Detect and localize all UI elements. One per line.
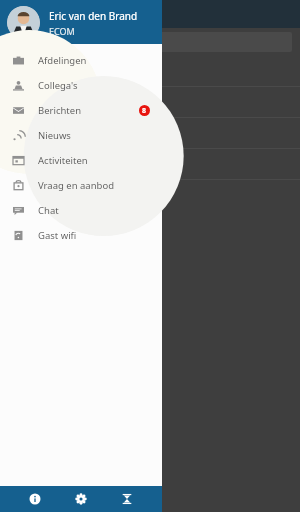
staticText: Development xyxy=(44,104,101,116)
staticText: Chat xyxy=(38,204,59,217)
button[interactable]: Collega's xyxy=(0,73,162,98)
staticText: 8 xyxy=(142,106,147,116)
button[interactable]: ECOM xyxy=(0,87,300,118)
button[interactable]: Chat xyxy=(0,198,162,223)
staticText: Gast wifi xyxy=(38,229,77,242)
staticText: Eric van den Brand xyxy=(49,9,138,23)
staticText: ECOM ICT BV xyxy=(44,120,106,134)
staticText: ICT xyxy=(44,135,58,147)
button[interactable]: Nieuws xyxy=(0,123,162,148)
staticText: SalesRapp xyxy=(44,151,93,165)
button[interactable]: Vraag en aanbod xyxy=(0,173,162,198)
button[interactable]: Eric van den Brand xyxy=(0,0,162,44)
button[interactable]: Activiteiten xyxy=(0,148,162,173)
button[interactable]: Gast wifi xyxy=(0,223,162,248)
button[interactable]: Back xyxy=(3,5,21,23)
staticText: ECOM xyxy=(44,89,73,103)
button[interactable]: DOTCOM Projects BV xyxy=(0,56,300,87)
button[interactable]: Settings xyxy=(70,488,92,510)
button[interactable]: Afdelingen xyxy=(0,48,162,73)
button[interactable]: Information xyxy=(24,488,46,510)
staticText: Afdelingen xyxy=(38,54,87,67)
button[interactable]: Berichten xyxy=(0,98,162,123)
staticText: DOTCOM Projects BV xyxy=(44,58,143,72)
staticText: Vraag en aanbod xyxy=(38,179,114,192)
button[interactable]: Log out xyxy=(116,488,138,510)
staticText: Development xyxy=(44,73,101,85)
staticText: Nieuws xyxy=(38,129,71,142)
button[interactable]: SalesRapp xyxy=(0,149,300,180)
button[interactable]: ec xyxy=(8,32,292,52)
staticText: Activiteiten xyxy=(38,154,88,167)
staticText: Berichten xyxy=(38,104,81,117)
button[interactable]: ECOM ICT BV xyxy=(0,118,300,149)
staticText: Collega's xyxy=(38,79,78,92)
staticText: Nieuws xyxy=(48,7,87,22)
staticText: ECOM xyxy=(49,25,75,37)
